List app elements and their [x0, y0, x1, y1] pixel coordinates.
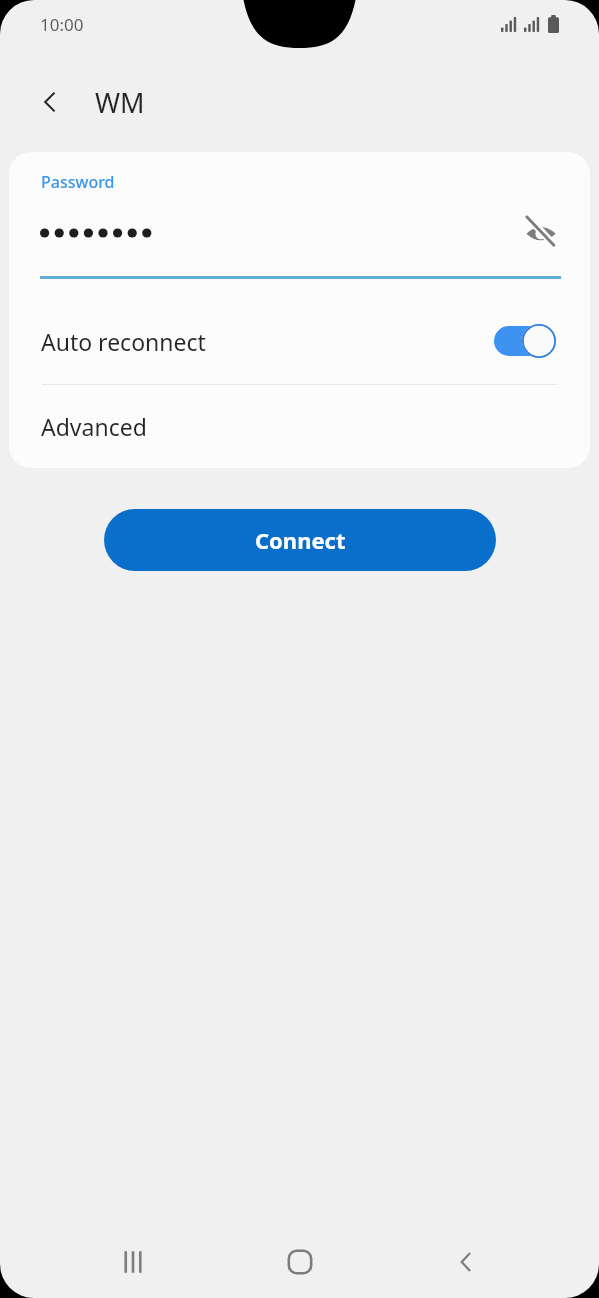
button[interactable]: Home: [267, 1229, 333, 1295]
staticText: Advanced: [41, 411, 147, 442]
button[interactable]: Advanced: [9, 385, 590, 468]
button[interactable]: Back: [26, 78, 74, 126]
button[interactable]: Show password: [518, 210, 564, 256]
button[interactable]: Password: [9, 152, 590, 298]
staticText: Connect: [255, 525, 346, 555]
button[interactable]: Recent apps: [100, 1229, 166, 1295]
button[interactable]: Back: [433, 1229, 499, 1295]
staticText: Password: [41, 171, 115, 193]
staticText: WM: [95, 84, 145, 121]
staticText: 10:00: [40, 13, 84, 36]
button[interactable]: Auto reconnect: [9, 298, 590, 384]
staticText: Auto reconnect: [41, 326, 494, 357]
button[interactable]: Connect: [104, 509, 496, 571]
button[interactable]: Auto reconnect toggle: [494, 324, 556, 358]
